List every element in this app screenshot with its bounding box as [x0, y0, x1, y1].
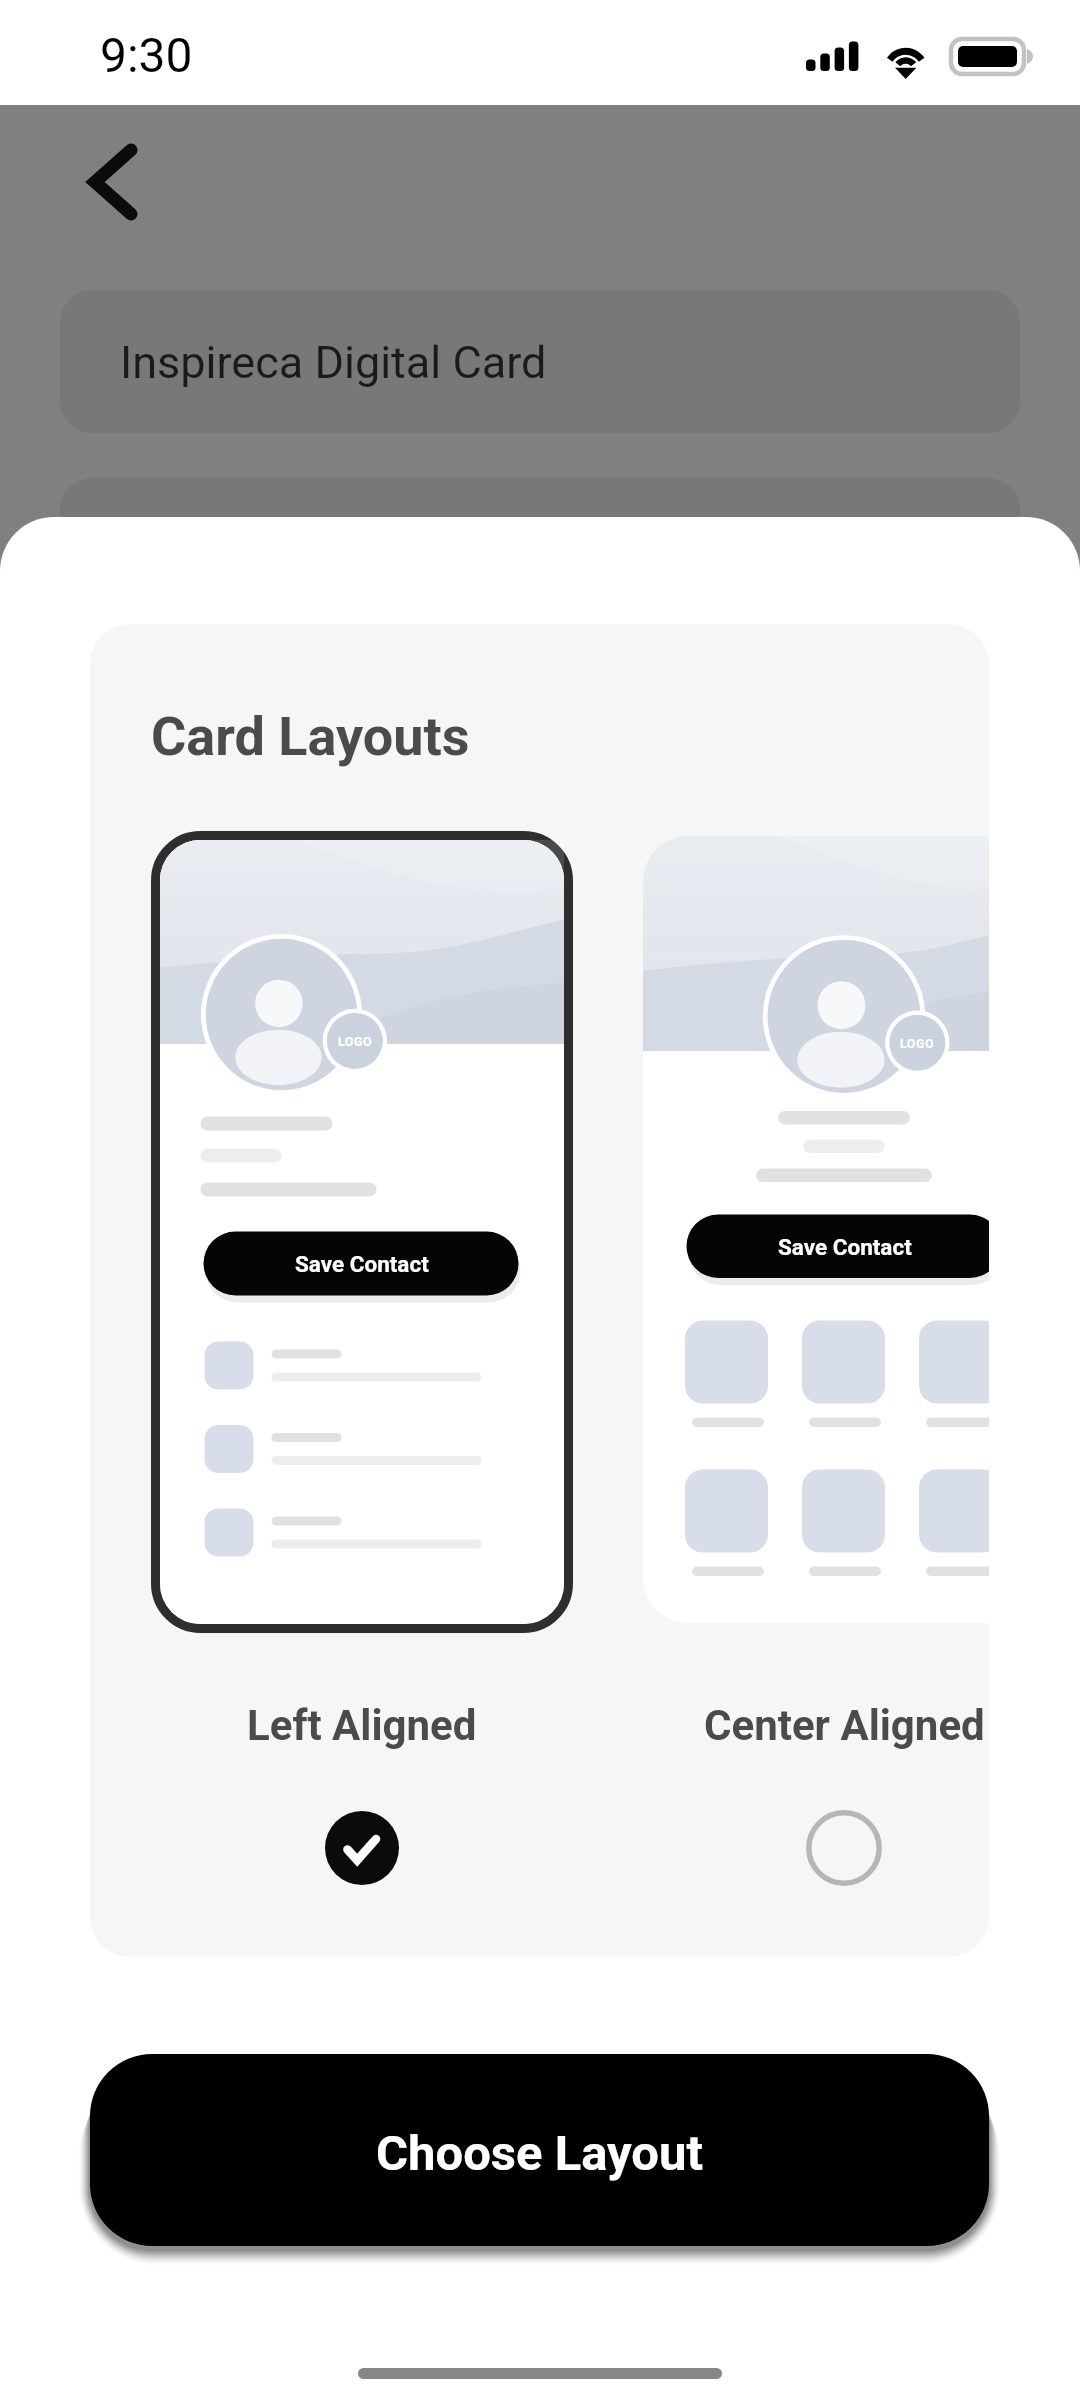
staticText: Left Aligned — [247, 1701, 477, 1750]
staticText: Center Aligned — [704, 1701, 985, 1750]
staticText: Save Contact — [295, 1251, 429, 1277]
button[interactable]: Center Aligned — [643, 1680, 989, 1770]
button[interactable]: Left Aligned — [151, 1680, 573, 1770]
button[interactable]: Left Aligned layout — [151, 831, 573, 1633]
staticText: Choose Layout — [376, 2125, 703, 2182]
staticText: LOGO — [338, 1034, 373, 1049]
button[interactable]: Choose Layout — [90, 2054, 989, 2246]
button[interactable]: Back — [62, 127, 180, 245]
button[interactable]: Center Aligned, not selected — [806, 1810, 882, 1886]
staticText: Save Contact — [778, 1234, 912, 1260]
staticText: LOGO — [900, 1036, 935, 1051]
staticText: Card Layouts — [151, 705, 470, 768]
button[interactable]: Center Aligned layout — [643, 836, 989, 1623]
staticText: Inspireca Digital Card — [120, 336, 547, 389]
button[interactable]: Left Aligned, selected — [325, 1811, 399, 1885]
staticText: 9:30 — [100, 27, 193, 83]
